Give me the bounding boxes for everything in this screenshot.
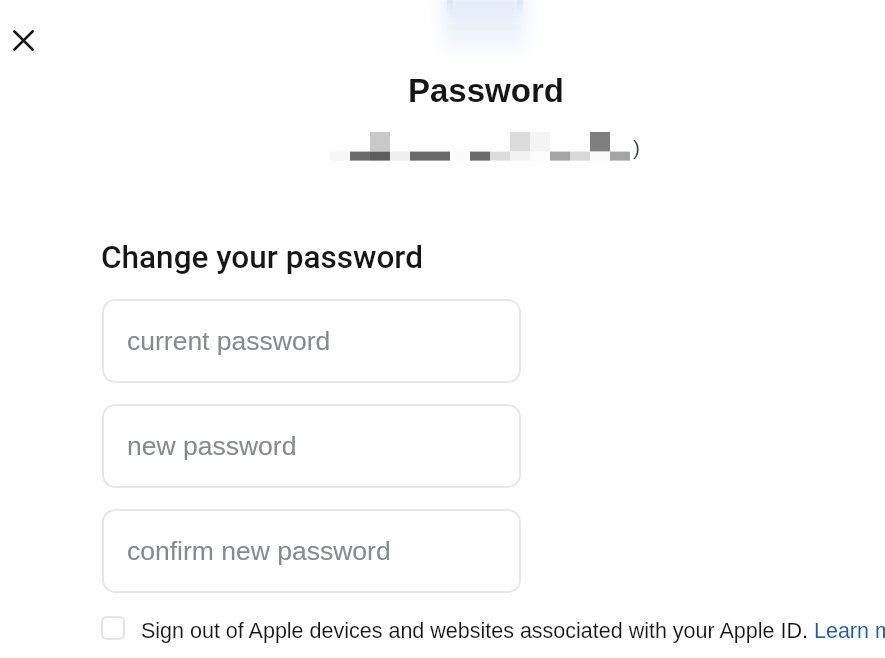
button[interactable]: Sign out of other devices checkbox (101, 614, 808, 648)
other: Sign out of other devices checkbox (101, 616, 125, 640)
button[interactable]: Learn more (808, 614, 885, 648)
staticText: Password (408, 72, 564, 109)
staticText: new password (127, 431, 297, 461)
button[interactable]: confirm new password (102, 509, 521, 593)
staticText: confirm new password (127, 536, 391, 566)
staticText: Sign out of Apple devices and websites a… (141, 619, 808, 643)
staticText: current password (127, 326, 331, 356)
staticText: ) (633, 136, 640, 159)
button[interactable]: new password (102, 404, 521, 488)
staticText: Learn more (808, 619, 885, 643)
button[interactable]: Close (4, 21, 42, 59)
staticText: Change your password (101, 239, 423, 276)
button[interactable]: current password (102, 299, 521, 383)
